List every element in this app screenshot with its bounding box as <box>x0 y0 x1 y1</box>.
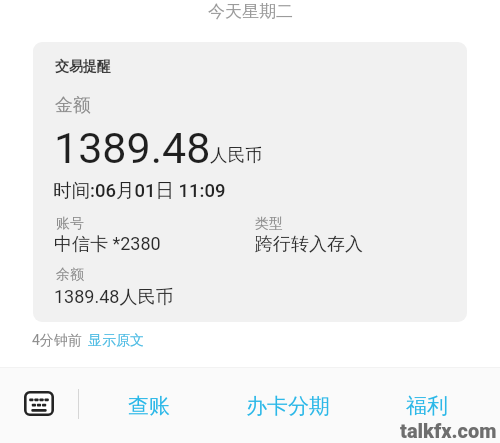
staticText: 1389.48 <box>54 123 211 173</box>
staticText: 办卡分期 <box>246 393 330 419</box>
staticText: 4分钟前 <box>32 332 82 350</box>
staticText: 金额 <box>55 94 91 117</box>
staticText: 福利 <box>406 393 448 419</box>
button[interactable]: Keyboard <box>19 384 59 422</box>
staticText: 类型 <box>255 215 283 233</box>
staticText: 查账 <box>128 393 170 419</box>
button[interactable]: 办卡分期 <box>236 385 340 427</box>
staticText: 余额 <box>56 266 84 284</box>
staticText: talkfx.com <box>400 419 497 442</box>
button[interactable]: 福利 <box>396 385 458 427</box>
button[interactable]: 显示原文 <box>88 332 144 350</box>
staticText: 中信卡 *2380 <box>54 233 161 256</box>
staticText: 交易提醒 <box>55 58 111 76</box>
staticText: 时间:06月01日 11:09 <box>53 179 226 202</box>
staticText: 账号 <box>56 215 84 233</box>
staticText: 显示原文 <box>88 332 144 350</box>
staticText: 今天星期二 <box>208 1 293 22</box>
button[interactable]: 查账 <box>118 385 180 427</box>
staticText: 人民币 <box>210 144 263 166</box>
button[interactable]: 交易提醒 <box>33 42 467 322</box>
staticText: 跨行转入存入 <box>255 233 363 256</box>
staticText: 1389.48人民币 <box>54 286 174 309</box>
